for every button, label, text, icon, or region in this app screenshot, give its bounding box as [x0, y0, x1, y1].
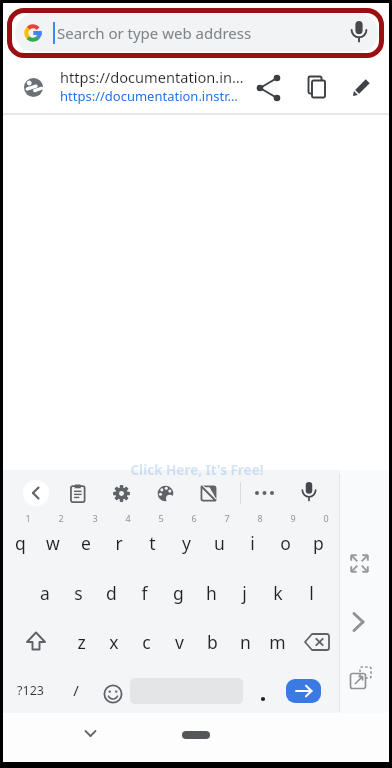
button[interactable] — [136, 521, 168, 565]
button[interactable] — [111, 483, 132, 504]
button[interactable] — [95, 567, 127, 611]
staticText: 9 — [290, 512, 296, 524]
button[interactable] — [37, 521, 69, 565]
button[interactable] — [155, 483, 176, 504]
button[interactable] — [199, 484, 218, 503]
staticText: g — [173, 581, 184, 605]
button[interactable] — [8, 668, 52, 714]
staticText: q — [15, 531, 26, 555]
button[interactable] — [195, 567, 227, 611]
staticText: r — [115, 531, 123, 555]
staticText: h — [206, 581, 217, 605]
button[interactable] — [103, 521, 135, 565]
button[interactable] — [345, 72, 377, 104]
staticText: s — [74, 581, 83, 605]
staticText: k — [273, 581, 283, 605]
staticText: n — [240, 630, 251, 654]
staticText: c — [142, 630, 151, 654]
staticText: 7 — [224, 512, 230, 524]
staticText: t — [149, 531, 156, 555]
staticText: 2 — [58, 512, 64, 524]
button[interactable] — [84, 729, 97, 739]
staticText: 1 — [25, 512, 31, 524]
button[interactable] — [163, 617, 195, 661]
staticText: j — [242, 581, 247, 605]
staticText: p — [313, 531, 324, 555]
button[interactable] — [351, 612, 366, 632]
staticText: 0 — [323, 512, 329, 524]
button[interactable] — [348, 666, 373, 691]
button[interactable] — [203, 521, 235, 565]
button[interactable] — [65, 617, 97, 661]
staticText: o — [280, 531, 291, 555]
button[interactable] — [62, 567, 94, 611]
button[interactable] — [254, 487, 275, 499]
button[interactable] — [162, 567, 194, 611]
staticText: m — [269, 630, 286, 654]
button[interactable] — [302, 521, 334, 565]
button[interactable] — [23, 480, 49, 506]
button[interactable] — [269, 521, 301, 565]
staticText: f — [141, 581, 148, 605]
staticText: i — [250, 531, 255, 555]
button[interactable] — [228, 567, 260, 611]
button[interactable] — [262, 567, 294, 611]
staticText: 6 — [191, 512, 197, 524]
button[interactable] — [236, 521, 268, 565]
staticText: x — [109, 630, 119, 654]
button[interactable] — [70, 521, 102, 565]
staticText: 4 — [125, 512, 131, 524]
staticText: e — [81, 531, 91, 555]
staticText: Search or type web address — [57, 23, 252, 43]
button[interactable] — [301, 72, 333, 104]
button[interactable] — [253, 72, 285, 104]
button[interactable] — [261, 617, 293, 661]
staticText: https://documentation.in… — [60, 67, 244, 87]
staticText: 5 — [158, 512, 164, 524]
staticText: u — [214, 531, 225, 555]
staticText: w — [46, 531, 60, 555]
button[interactable] — [98, 617, 130, 661]
staticText: / — [73, 680, 79, 700]
button[interactable] — [295, 567, 327, 611]
staticText: a — [40, 581, 50, 605]
button[interactable] — [128, 567, 160, 611]
button[interactable] — [4, 521, 36, 565]
button[interactable] — [182, 731, 210, 739]
button[interactable] — [130, 617, 162, 661]
staticText: y — [182, 531, 191, 555]
button[interactable] — [304, 633, 331, 651]
button[interactable] — [170, 521, 202, 565]
button[interactable] — [68, 483, 88, 504]
button[interactable] — [300, 482, 318, 505]
button[interactable] — [3, 62, 390, 113]
staticText: ?123 — [17, 682, 44, 699]
button[interactable] — [229, 617, 261, 661]
button[interactable] — [15, 14, 378, 52]
staticText: 3 — [92, 512, 98, 524]
staticText: z — [77, 630, 86, 654]
button[interactable] — [350, 554, 369, 573]
staticText: d — [106, 581, 117, 605]
button[interactable] — [29, 567, 61, 611]
staticText: l — [309, 581, 314, 605]
staticText: https://documentation.instr… — [60, 87, 238, 105]
staticText: v — [175, 630, 184, 654]
button[interactable] — [348, 21, 370, 46]
button[interactable] — [286, 679, 321, 703]
button[interactable] — [196, 617, 228, 661]
button[interactable] — [258, 694, 268, 704]
staticText: b — [207, 630, 218, 654]
button[interactable] — [103, 684, 123, 704]
staticText: 8 — [257, 512, 263, 524]
staticText: Click Here, It's Free! — [130, 461, 264, 479]
button[interactable] — [25, 631, 47, 652]
